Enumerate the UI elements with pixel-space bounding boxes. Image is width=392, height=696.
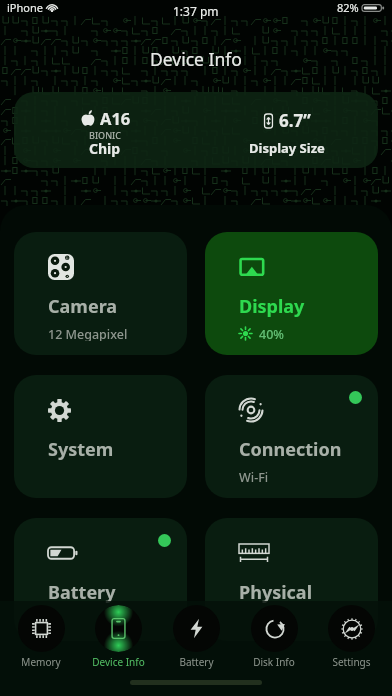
- staticText: Display: [239, 294, 305, 319]
- button[interactable]: Device Info: [81, 605, 155, 669]
- staticText: BIONIC: [89, 129, 122, 141]
- staticText: Device Info: [92, 655, 145, 669]
- staticText: 1:37 pm: [173, 3, 219, 19]
- button[interactable]: Battery: [159, 605, 233, 669]
- staticText: Settings: [332, 655, 371, 669]
- other: Memory: [31, 618, 52, 639]
- staticText: Physical: [239, 580, 313, 605]
- button[interactable]: System: [14, 375, 187, 498]
- staticText: 40%: [259, 326, 284, 341]
- button[interactable]: Display: [205, 232, 378, 355]
- staticText: A16: [100, 107, 131, 129]
- staticText: 12 Megapixel: [48, 326, 128, 341]
- staticText: Wi-Fi: [239, 469, 269, 484]
- other: Device Info: [107, 617, 130, 640]
- button[interactable]: Settings: [314, 605, 388, 669]
- staticText: 82%: [337, 0, 359, 15]
- staticText: Battery: [48, 580, 116, 605]
- staticText: Memory: [21, 655, 61, 669]
- button[interactable]: A16: [14, 92, 378, 168]
- staticText: iPhone: [7, 0, 43, 15]
- other: Settings: [341, 618, 363, 640]
- staticText: Connection: [239, 437, 342, 462]
- staticText: Chip: [89, 139, 121, 158]
- other: Battery: [186, 618, 207, 639]
- staticText: Disk Info: [253, 655, 295, 669]
- staticText: Battery: [179, 655, 214, 669]
- button[interactable]: Physical: [205, 518, 378, 641]
- staticText: Device Info: [150, 47, 242, 71]
- staticText: Display Size: [249, 139, 325, 157]
- staticText: 6.7”: [279, 109, 311, 132]
- button[interactable]: Camera: [14, 232, 187, 355]
- button[interactable]: Disk Info: [237, 605, 311, 669]
- button[interactable]: Memory: [4, 605, 78, 669]
- button[interactable]: Battery: [14, 518, 187, 641]
- staticText: System: [48, 437, 114, 462]
- staticText: Camera: [48, 294, 118, 319]
- other: Disk Info: [264, 618, 286, 640]
- button[interactable]: Connection: [205, 375, 378, 498]
